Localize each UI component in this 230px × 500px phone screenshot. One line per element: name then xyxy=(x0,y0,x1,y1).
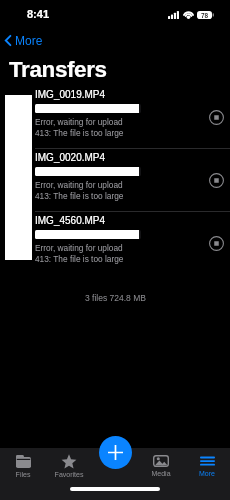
staticText: Transfers xyxy=(9,57,107,82)
staticText: Error, waiting for upload xyxy=(35,180,123,189)
button[interactable]: More xyxy=(0,32,230,48)
staticText: IMG_4560.MP4 xyxy=(35,215,106,226)
button[interactable]: Favorites xyxy=(46,455,92,479)
button[interactable]: Stop transfer xyxy=(205,232,227,254)
staticText: Files xyxy=(0,471,46,479)
staticText: 3 files 724.8 MB xyxy=(85,293,146,302)
staticText: IMG_0020.MP4 xyxy=(35,152,106,163)
staticText: More xyxy=(15,34,43,47)
staticText: Error, waiting for upload xyxy=(35,243,123,252)
staticText: IMG_0019.MP4 xyxy=(35,89,106,100)
button[interactable]: IMG_0019.MP4 xyxy=(0,85,230,148)
staticText: Media xyxy=(138,470,184,478)
button[interactable]: Add xyxy=(99,436,132,469)
button[interactable]: Media xyxy=(138,455,184,478)
staticText: 78 xyxy=(201,12,209,19)
staticText: 413: The file is too large xyxy=(35,254,124,263)
staticText: More xyxy=(184,470,230,478)
staticText: 413: The file is too large xyxy=(35,191,124,200)
button[interactable]: IMG_0020.MP4 xyxy=(0,148,230,211)
staticText: Favorites xyxy=(46,471,92,479)
button[interactable]: More xyxy=(184,455,230,478)
button[interactable]: Stop transfer xyxy=(205,106,227,128)
button[interactable]: IMG_4560.MP4 xyxy=(0,211,230,274)
button[interactable]: Files xyxy=(0,455,46,479)
staticText: 413: The file is too large xyxy=(35,128,124,137)
button[interactable]: Stop transfer xyxy=(205,169,227,191)
staticText: Error, waiting for upload xyxy=(35,117,123,126)
staticText: 8:41 xyxy=(27,8,50,20)
